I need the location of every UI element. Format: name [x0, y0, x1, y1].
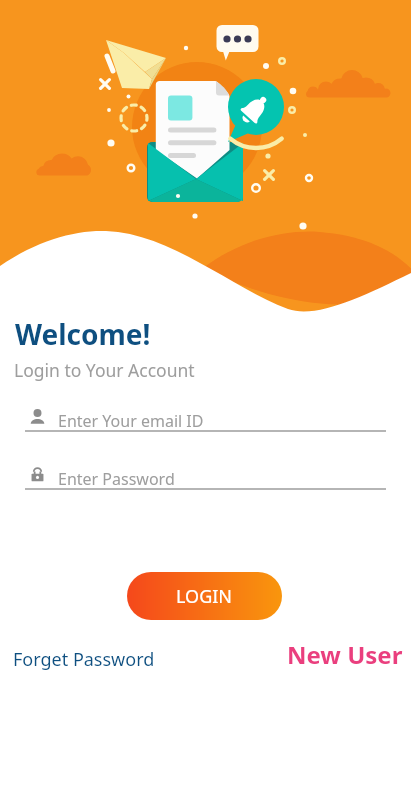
other: Email — [29, 408, 46, 429]
staticText: Forget Password — [13, 647, 155, 672]
staticText: New User — [287, 638, 403, 671]
staticText: Login to Your Account — [14, 358, 195, 382]
button[interactable]: Forget Password — [7, 641, 161, 678]
button[interactable]: Email — [0, 407, 411, 437]
other: Password — [29, 466, 46, 487]
staticText: Enter Password — [58, 468, 175, 490]
staticText: LOGIN — [176, 584, 233, 609]
button[interactable]: LOGIN — [127, 572, 282, 620]
button[interactable]: Password — [0, 465, 411, 495]
staticText: Enter Your email ID — [58, 410, 204, 432]
button[interactable]: New User — [281, 632, 409, 677]
staticText: Welcome! — [15, 315, 151, 353]
